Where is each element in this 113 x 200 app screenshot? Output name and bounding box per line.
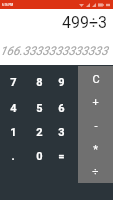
button[interactable]: 2 xyxy=(26,120,52,145)
staticText: 6:16 PM xyxy=(2,3,14,7)
staticText: 3 xyxy=(58,126,65,139)
button[interactable]: * xyxy=(78,138,113,160)
staticText: 0 xyxy=(36,150,43,163)
staticText: ÷ xyxy=(92,165,99,178)
button[interactable]: 7 xyxy=(0,70,26,95)
staticText: 5 xyxy=(36,102,43,115)
staticText: 499÷3 xyxy=(62,13,108,32)
staticText: 2 xyxy=(36,126,43,139)
button[interactable]: 5 xyxy=(26,96,52,121)
staticText: 7 xyxy=(10,76,17,89)
button[interactable]: . xyxy=(0,144,26,169)
button[interactable]: 0 xyxy=(26,144,52,169)
staticText: 1 xyxy=(10,126,17,139)
staticText: * xyxy=(93,143,98,156)
staticText: C xyxy=(92,73,100,86)
button[interactable]: = xyxy=(48,144,74,169)
button[interactable]: 6 xyxy=(48,96,74,121)
button[interactable]: 3 xyxy=(48,120,74,145)
staticText: + xyxy=(92,96,99,109)
button[interactable]: + xyxy=(78,91,113,114)
staticText: . xyxy=(11,150,15,163)
button[interactable]: 1 xyxy=(0,120,26,145)
staticText: 4 xyxy=(10,102,17,115)
staticText: 9 xyxy=(58,76,65,89)
staticText: 166.3333333333333 xyxy=(0,44,108,58)
staticText: - xyxy=(94,120,98,133)
button[interactable]: 9 xyxy=(48,70,74,95)
staticText: = xyxy=(58,150,65,163)
button[interactable]: C xyxy=(78,67,113,91)
staticText: 6 xyxy=(58,102,65,115)
button[interactable]: 8 xyxy=(26,70,52,95)
staticText: 8 xyxy=(36,76,43,89)
button[interactable]: 4 xyxy=(0,96,26,121)
button[interactable]: ÷ xyxy=(78,160,113,183)
button[interactable]: - xyxy=(78,114,113,138)
